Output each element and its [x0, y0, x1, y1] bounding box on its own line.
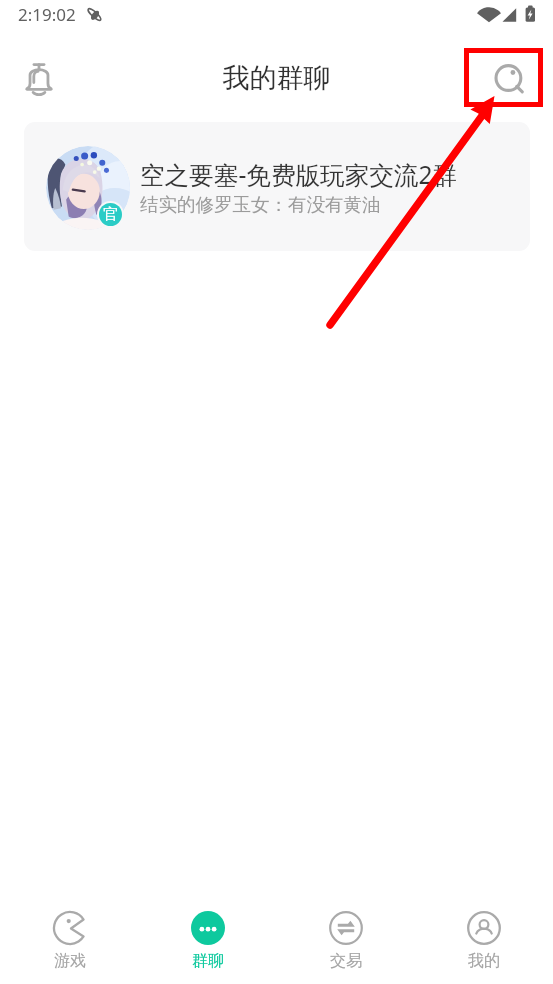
- staticText: 我的: [468, 951, 500, 971]
- button[interactable]: Notifications: [14, 55, 64, 105]
- staticText: 我的群聊: [0, 61, 553, 95]
- staticText: 结实的修罗玉女：有没有黄油: [140, 193, 381, 216]
- staticText: 交易: [330, 951, 362, 971]
- button[interactable]: 群聊: [139, 894, 277, 984]
- button[interactable]: 我的: [415, 894, 553, 984]
- staticText: 空之要塞-免费版玩家交流2群: [140, 158, 458, 192]
- button[interactable]: 游戏: [0, 894, 139, 984]
- button[interactable]: Search: [485, 56, 535, 106]
- staticText: 游戏: [54, 951, 86, 971]
- staticText: 官: [103, 205, 118, 224]
- staticText: 2:19:02: [18, 3, 76, 26]
- button[interactable]: 官: [24, 122, 530, 251]
- button[interactable]: 交易: [277, 894, 415, 984]
- staticText: 群聊: [192, 951, 224, 971]
